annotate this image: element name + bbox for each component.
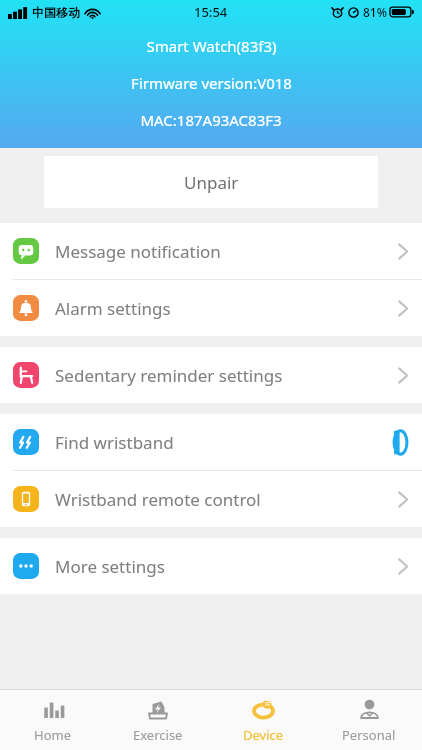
button[interactable]: Find wristband bbox=[0, 414, 422, 470]
staticText: Unpair bbox=[184, 171, 239, 194]
staticText: Personal bbox=[342, 726, 396, 744]
button[interactable]: Personal bbox=[316, 697, 422, 744]
staticText: Home bbox=[34, 726, 71, 744]
staticText: Find wristband bbox=[55, 431, 174, 454]
other: Personal bbox=[357, 697, 382, 722]
staticText: MAC:187A93AC83F3 bbox=[140, 110, 282, 130]
staticText: 81% bbox=[363, 4, 387, 20]
button[interactable]: Exercise bbox=[105, 697, 210, 744]
button[interactable]: Home bbox=[0, 697, 105, 744]
staticText: Alarm settings bbox=[55, 297, 171, 320]
button[interactable]: Device bbox=[210, 697, 316, 744]
staticText: More settings bbox=[55, 555, 165, 578]
staticText: Firmware version:V018 bbox=[131, 73, 292, 93]
button[interactable]: More settings bbox=[0, 538, 422, 594]
staticText: 15:54 bbox=[194, 3, 228, 21]
button[interactable]: Wristband remote control bbox=[0, 471, 422, 527]
other: Home bbox=[40, 697, 65, 722]
staticText: 中国移动 bbox=[32, 5, 80, 20]
other: Exercise bbox=[145, 697, 170, 722]
staticText: Message notification bbox=[55, 240, 221, 263]
other: Device bbox=[251, 697, 276, 722]
staticText: Exercise bbox=[133, 726, 183, 744]
staticText: Smart Watch(83f3) bbox=[146, 36, 277, 56]
button[interactable]: Message notification bbox=[0, 223, 422, 279]
staticText: Sedentary reminder settings bbox=[55, 364, 283, 387]
button[interactable]: Sedentary reminder settings bbox=[0, 347, 422, 403]
staticText: Device bbox=[243, 726, 284, 744]
button[interactable]: Unpair bbox=[44, 156, 378, 208]
button[interactable]: Alarm settings bbox=[0, 280, 422, 336]
staticText: Wristband remote control bbox=[55, 488, 261, 511]
